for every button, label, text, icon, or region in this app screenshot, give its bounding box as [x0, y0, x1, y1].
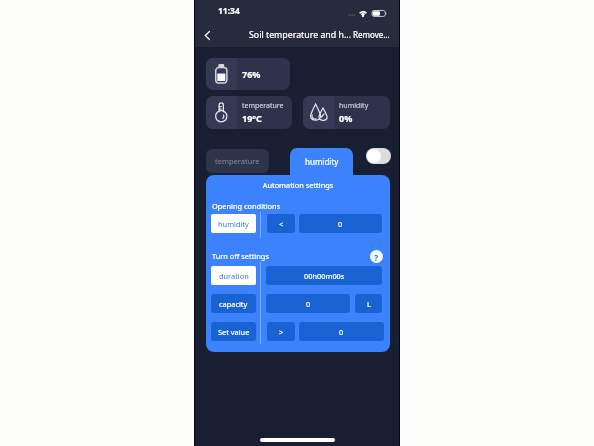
button[interactable]: Remove... — [352, 26, 391, 43]
staticText: humidity — [218, 219, 249, 229]
staticText: humidity — [339, 101, 369, 111]
staticText: 0% — [339, 112, 353, 124]
button[interactable]: humidity — [211, 214, 256, 233]
button[interactable]: Enable automation — [366, 148, 391, 164]
button[interactable]: 0 — [266, 294, 350, 313]
staticText: temperature — [242, 101, 284, 111]
button[interactable]: capacity — [211, 294, 256, 313]
button[interactable]: < — [267, 214, 295, 233]
staticText: Opening conditions — [212, 201, 281, 211]
staticText: ? — [374, 251, 379, 263]
staticText: > — [279, 327, 284, 337]
staticText: Automation settings — [206, 180, 390, 190]
button[interactable]: humidity — [290, 148, 353, 176]
staticText: Turn off settings — [212, 251, 269, 261]
button[interactable]: > — [267, 322, 295, 341]
button[interactable]: 76% — [206, 58, 290, 90]
staticText: Remove... — [353, 29, 390, 40]
button[interactable]: Set value — [211, 322, 256, 341]
staticText: temperature — [215, 156, 260, 166]
button[interactable]: temperature — [206, 96, 292, 129]
staticText: L — [367, 299, 371, 309]
button[interactable]: Back — [197, 25, 217, 45]
staticText: humidity — [305, 156, 339, 167]
button[interactable]: duration — [211, 266, 256, 285]
button[interactable]: temperature — [206, 149, 269, 173]
button[interactable]: 0 — [299, 214, 382, 233]
staticText: duration — [219, 271, 249, 281]
button[interactable]: L — [355, 294, 382, 313]
staticText: capacity — [219, 299, 248, 309]
staticText: 00h00m00s — [304, 271, 345, 281]
button[interactable]: humidity — [303, 96, 390, 129]
staticText: 19°C — [242, 112, 262, 124]
staticText: 0 — [306, 299, 311, 309]
button[interactable]: 00h00m00s — [266, 266, 382, 285]
staticText: 11:34 — [218, 5, 240, 17]
staticText: Set value — [218, 327, 250, 337]
staticText: < — [279, 219, 284, 229]
button[interactable]: 0 — [299, 322, 384, 341]
staticText: 0 — [338, 219, 343, 229]
staticText: 0 — [339, 327, 344, 337]
staticText: 76% — [242, 68, 261, 80]
button[interactable]: Help — [370, 250, 383, 263]
staticText: Soil temperature and h... — [249, 29, 352, 41]
